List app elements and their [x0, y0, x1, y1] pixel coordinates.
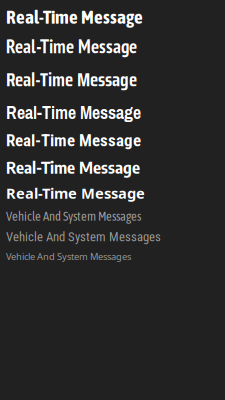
staticText: Vehicle And System Messages: [6, 250, 131, 263]
staticText: Real-Time Message: [6, 156, 140, 177]
staticText: Real-Time Message: [6, 131, 141, 150]
staticText: Real-Time Message: [6, 183, 145, 203]
staticText: Real-Time Message: [6, 6, 143, 28]
staticText: Real-Time Message: [6, 64, 137, 94]
staticText: Real-Time Message: [6, 100, 141, 125]
staticText: Real-Time Message: [6, 34, 137, 58]
staticText: Vehicle And System Messages: [6, 209, 141, 223]
staticText: Vehicle And System Messages: [6, 229, 161, 244]
